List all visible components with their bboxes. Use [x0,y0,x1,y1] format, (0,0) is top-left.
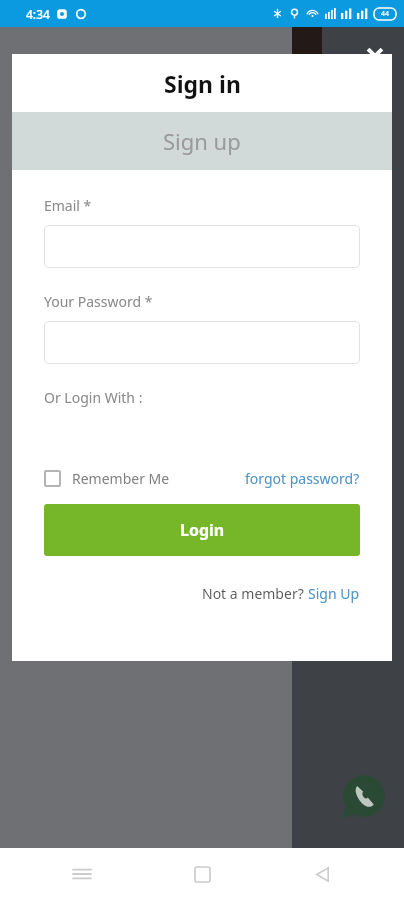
button[interactable]: forgot password? [245,469,360,488]
staticText: Sign in [164,68,241,99]
button[interactable]: Sign up [12,112,392,170]
button[interactable]: Sign Up [308,584,360,603]
staticText: Or Login With : [44,388,143,407]
button[interactable]: Login [44,504,360,556]
staticText: forgot password? [245,469,360,488]
button[interactable]: Home [142,848,262,900]
button[interactable] [44,225,360,268]
button[interactable]: Recent apps [22,848,142,900]
staticText: Remember Me [72,469,170,488]
staticText: Login [180,519,225,541]
staticText: Login/Signup [38,49,134,69]
button[interactable]: Close [358,39,392,73]
staticText: 44 [381,9,390,19]
button[interactable]: Chat on WhatsApp [338,770,390,822]
staticText: Sign Up [308,584,360,603]
staticText: Not a member? [202,584,308,603]
staticText: Your Password * [44,292,153,311]
staticText: Sign up [163,126,241,156]
button[interactable]: Remember Me [44,469,170,488]
staticText: Email * [44,196,92,215]
button[interactable]: Back [262,848,382,900]
button[interactable] [44,321,360,364]
staticText: 4:34 [26,6,50,22]
